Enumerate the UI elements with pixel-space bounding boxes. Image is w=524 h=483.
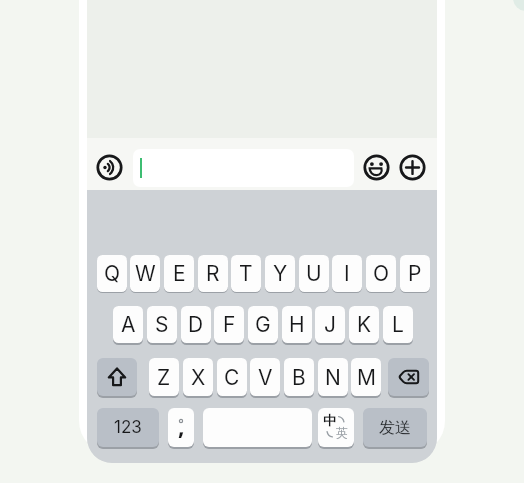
staticText: Q [104,261,121,286]
staticText: M [357,365,376,390]
button[interactable]: V [250,358,280,396]
button[interactable]: 中 [318,408,354,447]
staticText: K [357,312,372,337]
button[interactable]: E [164,255,194,292]
staticText: E [173,261,186,286]
staticText: N [325,365,341,390]
staticText: P [408,261,422,286]
button[interactable] [364,155,389,180]
button[interactable]: Y [265,255,295,292]
button[interactable]: K [349,306,379,343]
button[interactable]: P [400,255,430,292]
staticText: R [206,261,220,286]
button[interactable]: M [351,358,381,396]
staticText: Y [273,261,288,286]
staticText: 中 [323,412,336,428]
button[interactable]: Q [97,255,127,292]
button[interactable]: C [217,358,247,396]
staticText: T [239,261,253,286]
button[interactable]: A [113,306,143,343]
button[interactable]: F [214,306,244,343]
staticText: C [224,365,240,390]
button[interactable] [400,155,425,180]
button[interactable]: 123 [97,408,159,447]
button[interactable]: O [366,255,396,292]
staticText: S [155,312,169,337]
button[interactable]: W [130,255,160,292]
staticText: F [223,312,236,337]
staticText: O [373,261,390,286]
button[interactable]: G [248,306,278,343]
button[interactable]: X [183,358,213,396]
button[interactable] [388,358,429,396]
staticText: W [135,261,156,286]
staticText: X [191,365,206,390]
button[interactable]: I [332,255,362,292]
button[interactable]: N [318,358,348,396]
staticText: G [255,312,271,337]
staticText: L [392,312,404,337]
staticText: 发送 [379,418,411,438]
button[interactable]: L [383,306,413,343]
staticText: , [178,410,185,441]
staticText: D [188,312,204,337]
button[interactable]: H [282,306,312,343]
button[interactable]: B [284,358,314,396]
button[interactable]: S [147,306,177,343]
button[interactable]: 发送 [363,408,427,447]
button[interactable] [97,155,122,180]
staticText: 英 [336,425,348,440]
staticText: I [344,261,350,286]
button[interactable]: T [231,255,261,292]
button[interactable]: U [299,255,329,292]
staticText: B [292,365,306,390]
button[interactable]: R [198,255,228,292]
button[interactable]: D [181,306,211,343]
staticText: U [306,261,322,286]
button[interactable]: Z [149,358,179,396]
staticText: Z [157,365,171,390]
button[interactable]: J [315,306,345,343]
staticText: V [258,365,273,390]
button[interactable]: , [168,408,194,447]
staticText: H [289,312,305,337]
button[interactable] [97,358,137,396]
staticText: A [121,312,136,337]
button[interactable] [133,149,354,187]
staticText: J [324,312,336,337]
button[interactable] [203,408,312,447]
staticText: 123 [114,417,142,438]
